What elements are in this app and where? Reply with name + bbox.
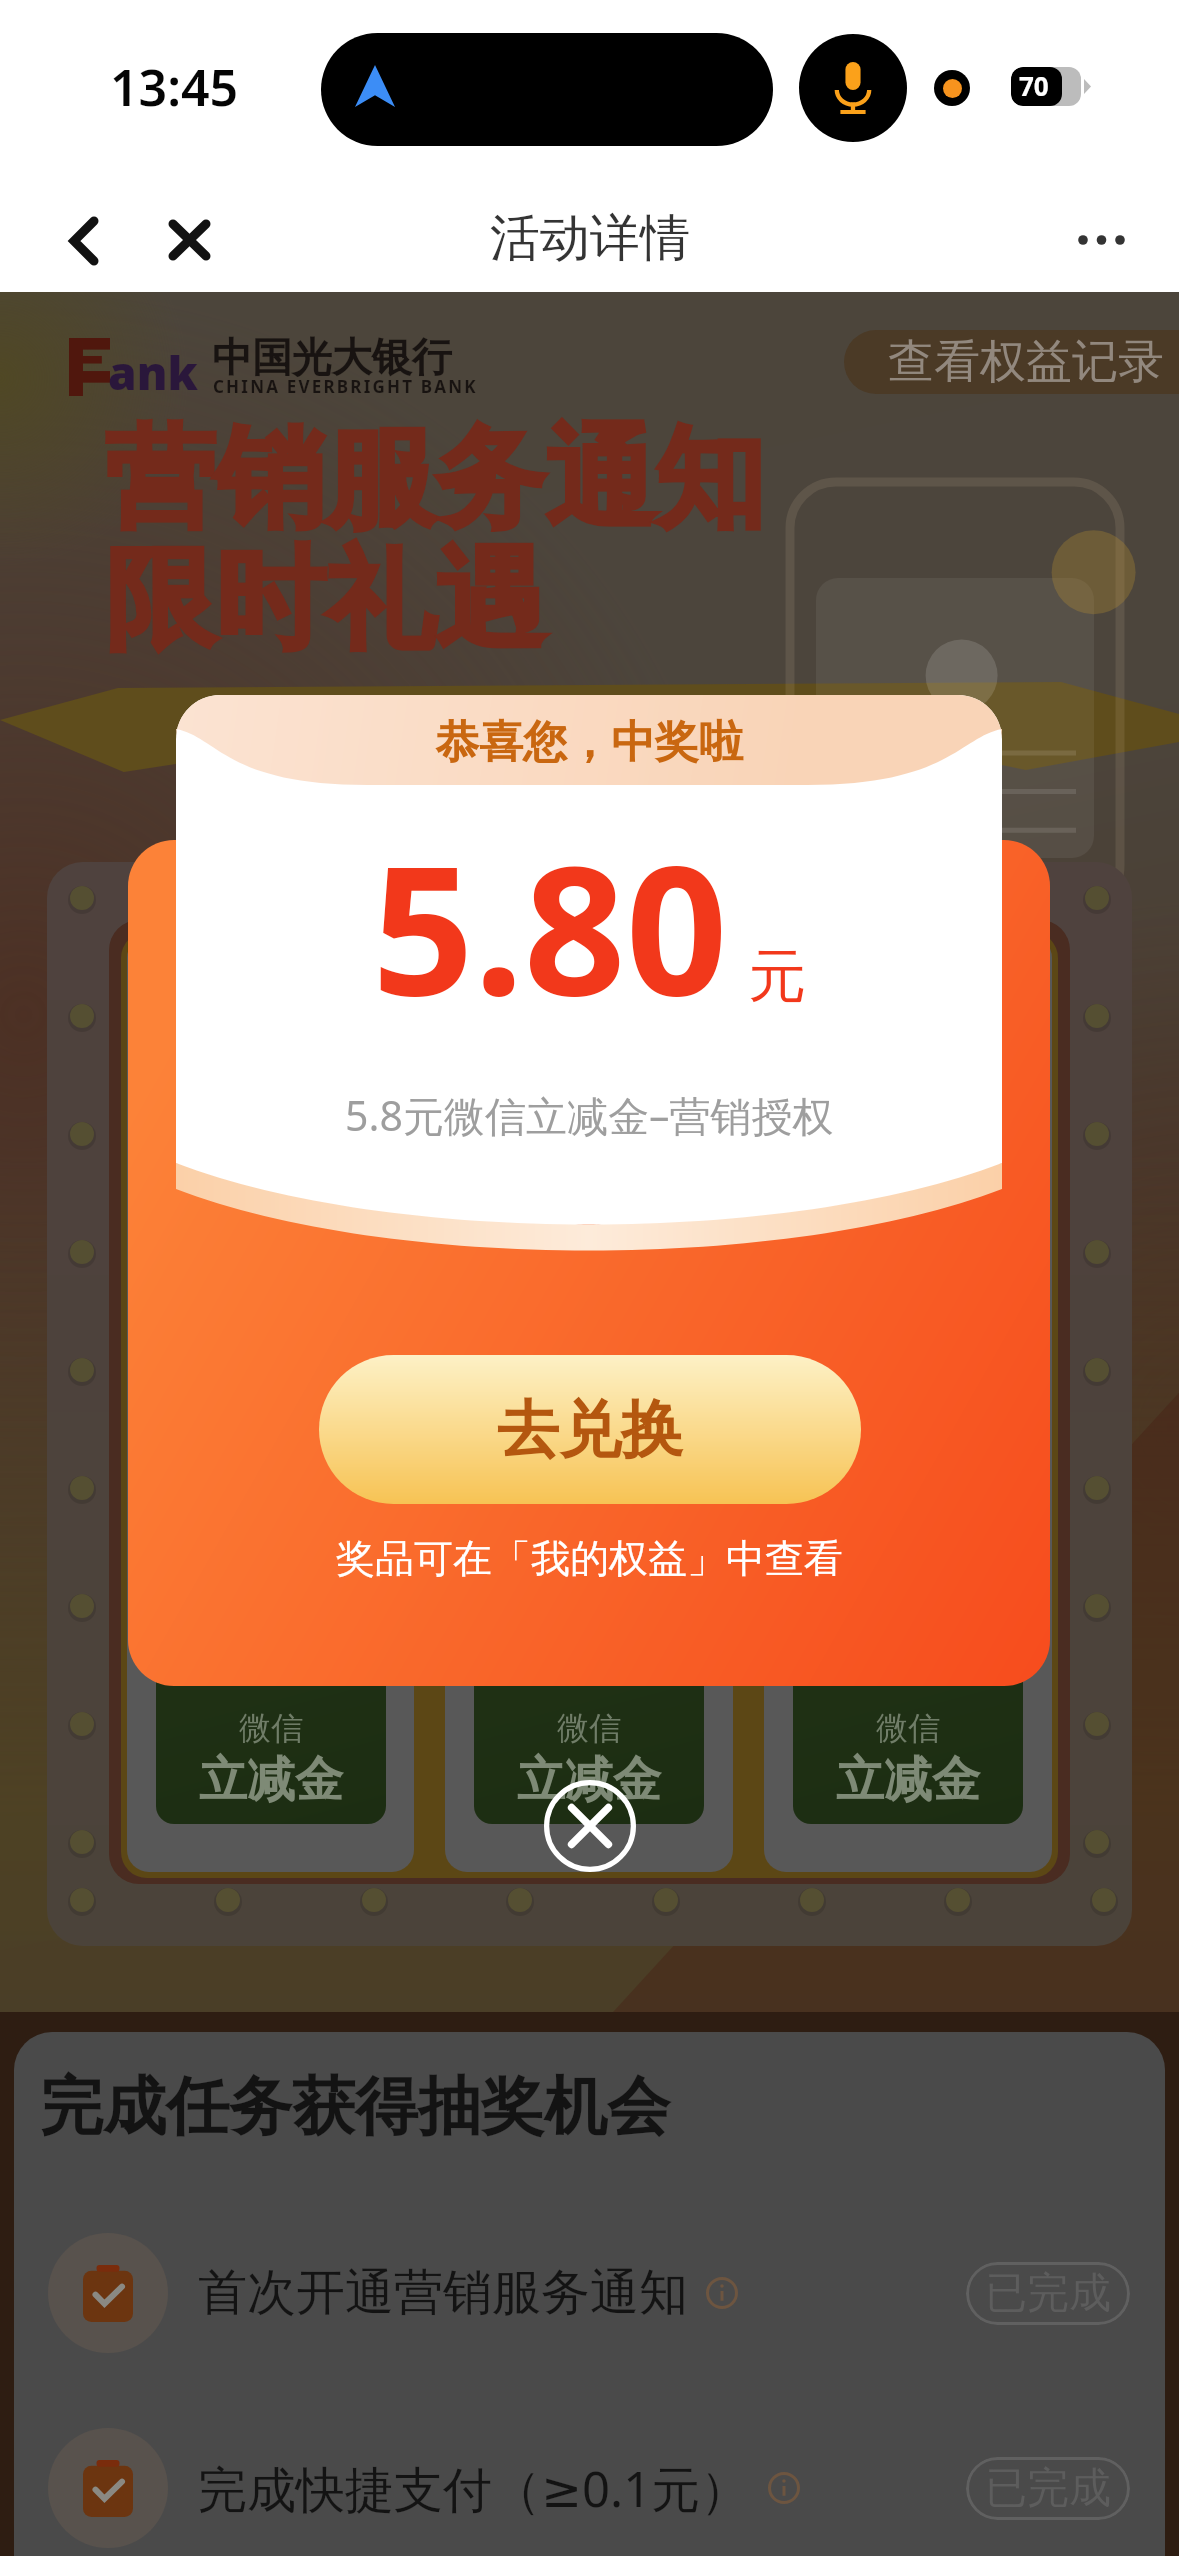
staticText: 70 — [1019, 68, 1049, 103]
staticText: 已完成 — [985, 2462, 1111, 2515]
staticText: CHINA EVERBRIGHT BANK — [213, 375, 478, 398]
staticText: 营销服务通知 — [105, 410, 765, 549]
button[interactable]: Close — [147, 198, 231, 282]
button[interactable]: Back — [42, 199, 126, 283]
staticText: 首次开通营销服务通知 — [198, 2262, 688, 2324]
staticText: 已完成 — [985, 2267, 1111, 2320]
staticText: 恭喜您，中奖啦 — [435, 715, 743, 770]
staticText: 5.8元微信立减金–营销授权 — [345, 1087, 834, 1143]
staticText: 5.80 — [372, 805, 728, 1047]
button[interactable]: 已完成 — [966, 2457, 1130, 2520]
staticText: ank — [108, 341, 198, 404]
staticText: 微信 — [557, 1708, 621, 1748]
staticText: 元 — [748, 940, 806, 1013]
staticText: 中国光大银行 — [212, 332, 452, 382]
button[interactable]: 去兑换 — [319, 1355, 861, 1504]
staticText: 限时礼遇 — [105, 531, 545, 670]
staticText: 微信 — [239, 1708, 303, 1748]
button[interactable]: 完成快捷支付（≥0.1元） — [14, 2428, 1165, 2548]
staticText: 完成任务获得抽奖机会 — [40, 2067, 670, 2146]
staticText: 完成快捷支付（≥0.1元） — [198, 2455, 750, 2522]
staticText: 立减金 — [517, 1750, 661, 1810]
button[interactable]: More options — [1059, 218, 1143, 262]
button[interactable]: 查看权益记录 — [844, 330, 1179, 394]
staticText: 立减金 — [199, 1750, 343, 1810]
button[interactable]: 已完成 — [966, 2262, 1130, 2325]
button[interactable]: Close dialog — [544, 1780, 636, 1872]
staticText: 微信 — [876, 1708, 940, 1748]
staticText: 查看权益记录 — [888, 333, 1164, 391]
staticText: 奖品可在「我的权益」中查看 — [336, 1534, 843, 1583]
staticText: 立减金 — [836, 1750, 980, 1810]
staticText: 去兑换 — [497, 1391, 683, 1469]
staticText: 活动详情 — [490, 207, 690, 270]
button[interactable]: 首次开通营销服务通知 — [14, 2233, 1165, 2353]
staticText: 13:45 — [110, 53, 239, 121]
